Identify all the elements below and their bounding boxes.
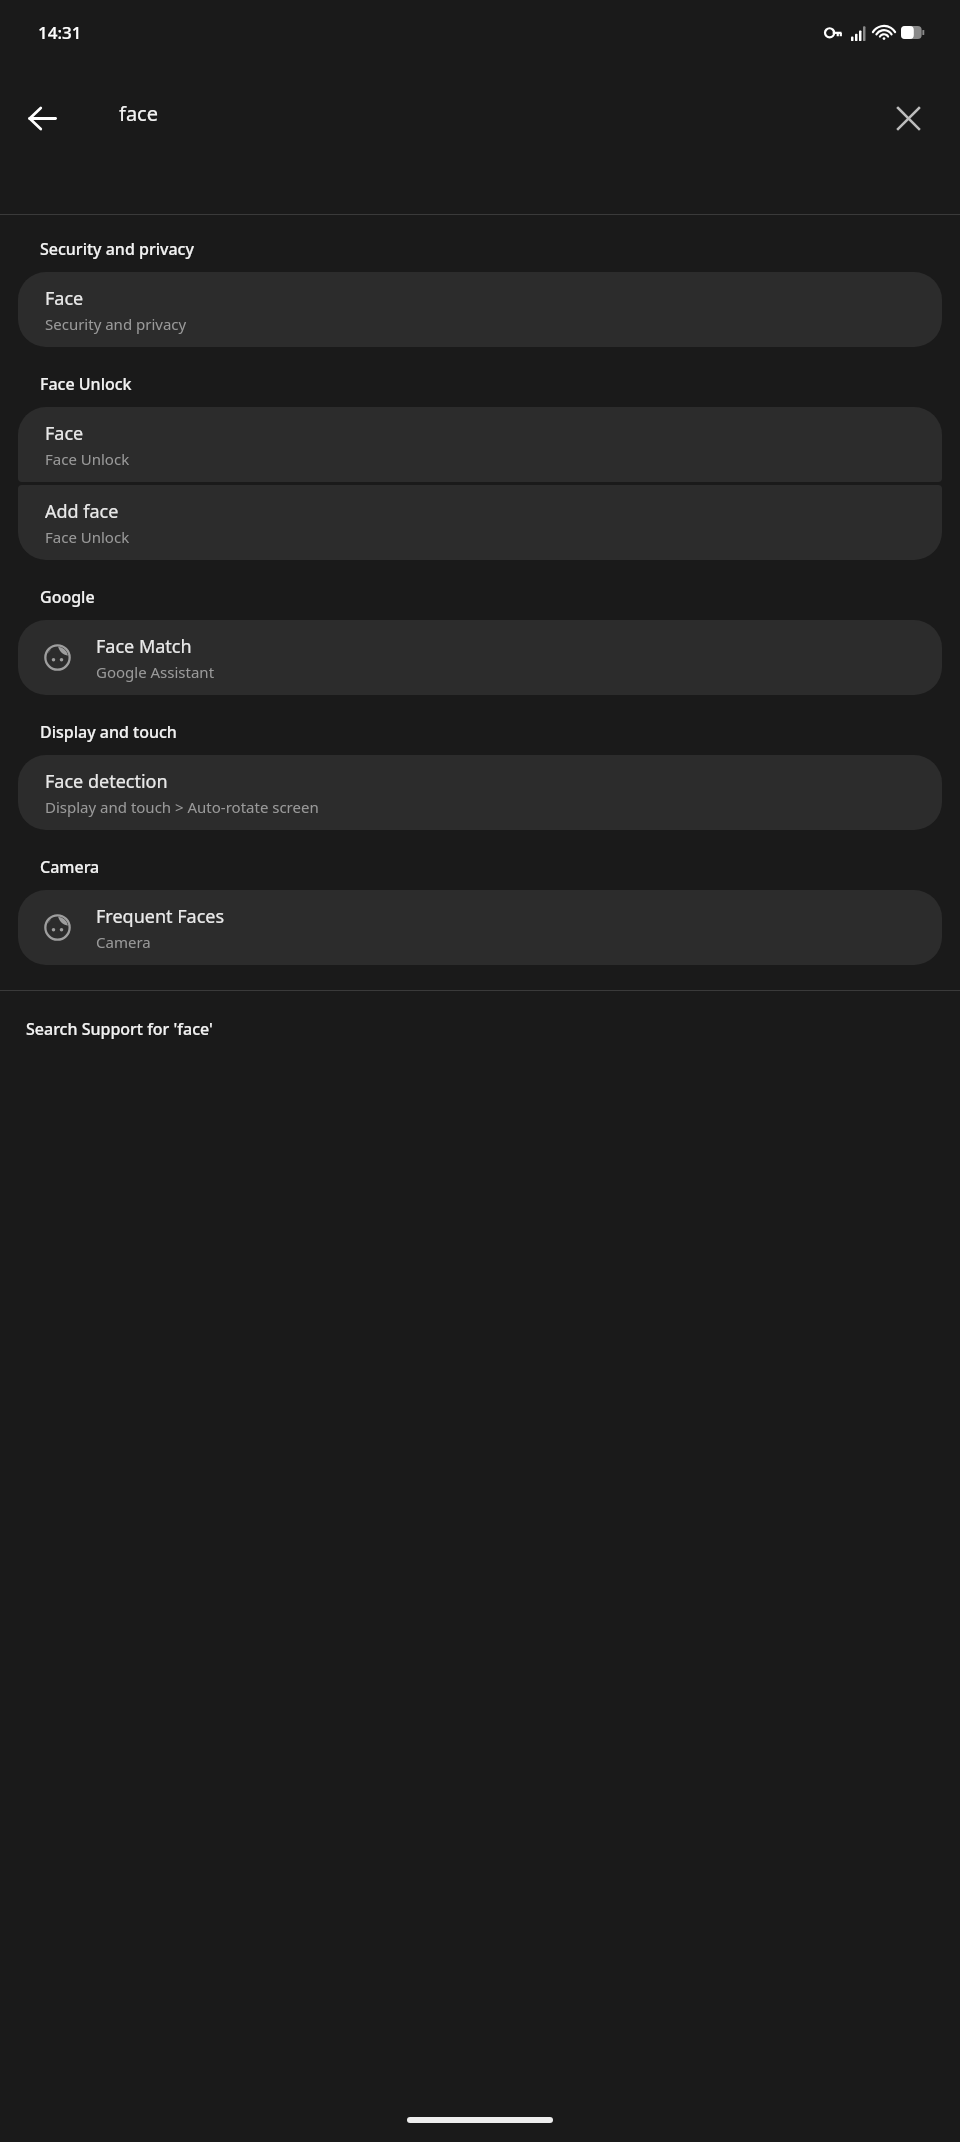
staticText: Display and touch [40, 721, 177, 743]
staticText: Google Assistant [96, 662, 215, 682]
staticText: Face [45, 286, 84, 311]
staticText: Face Unlock [45, 527, 130, 547]
staticText: Search Support for 'face' [26, 1018, 213, 1040]
staticText: Frequent Faces [96, 904, 225, 929]
staticText: Security and privacy [45, 314, 187, 334]
staticText: Face Match [96, 634, 192, 659]
staticText: Face Unlock [45, 449, 130, 469]
button[interactable]: Clear search [872, 82, 944, 154]
staticText: Add face [45, 499, 119, 524]
staticText: Security and privacy [40, 238, 194, 260]
button[interactable]: Search Support for 'face' [0, 991, 960, 1067]
button[interactable]: Frequent Faces [18, 890, 942, 965]
button[interactable]: Face detection [18, 755, 942, 830]
staticText: Display and touch > Auto-rotate screen [45, 797, 319, 817]
staticText: Face [45, 421, 84, 446]
button[interactable]: Face Match [18, 620, 942, 695]
staticText: Face detection [45, 769, 168, 794]
staticText: Camera [40, 856, 100, 878]
staticText: Face Unlock [40, 373, 132, 395]
button[interactable]: Add face [18, 485, 942, 560]
button[interactable]: Back [6, 82, 78, 154]
staticText: face [119, 100, 158, 127]
staticText: 14:31 [38, 21, 82, 44]
staticText: Camera [96, 932, 151, 952]
button[interactable]: Face [18, 407, 942, 482]
button[interactable]: Face [18, 272, 942, 347]
staticText: Google [40, 586, 95, 608]
